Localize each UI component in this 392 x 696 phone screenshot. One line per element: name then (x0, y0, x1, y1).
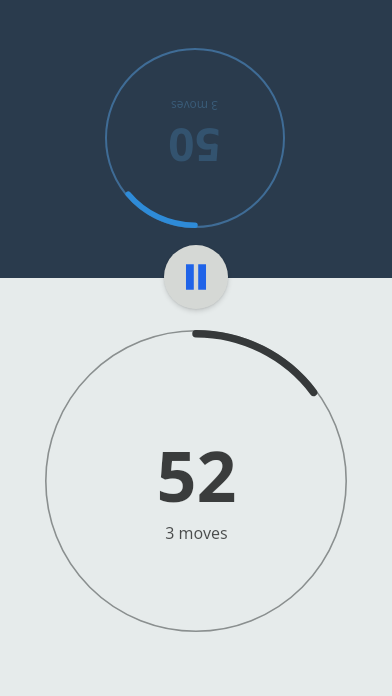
staticText: 50 (168, 114, 221, 177)
button[interactable]: Pause (164, 245, 228, 309)
button[interactable]: 52 (0, 278, 392, 696)
staticText: 52 (156, 427, 237, 522)
staticText: 3 moves (165, 522, 228, 544)
staticText: 3 moves (171, 98, 218, 114)
button[interactable]: 50 (0, 0, 392, 278)
